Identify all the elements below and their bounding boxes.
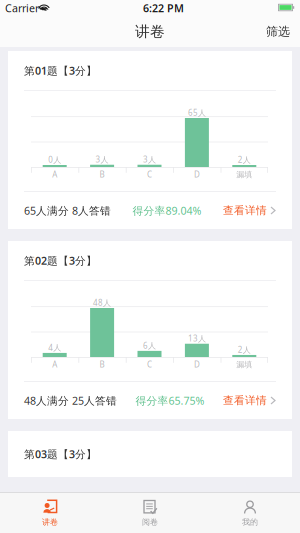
- staticText: 0人: [48, 154, 61, 165]
- staticText: B: [100, 359, 105, 370]
- staticText: 48人: [93, 297, 111, 308]
- staticText: A: [52, 169, 57, 180]
- button[interactable]: 查看详情: [223, 388, 276, 413]
- staticText: 3人: [96, 154, 109, 165]
- button[interactable]: 我的: [200, 493, 300, 533]
- staticText: 2人: [238, 344, 251, 355]
- button[interactable]: 查看详情: [223, 198, 276, 223]
- staticText: 65人满分 8人答错: [24, 203, 111, 218]
- staticText: C: [147, 359, 152, 370]
- button[interactable]: 阅卷: [100, 493, 200, 533]
- staticText: 阅卷: [142, 517, 158, 527]
- staticText: 第01题【3分】: [24, 63, 97, 78]
- staticText: 得分率89.04%: [132, 203, 201, 218]
- staticText: 我的: [242, 517, 258, 527]
- staticText: 2人: [238, 154, 251, 165]
- staticText: 48人满分 25人答错: [24, 393, 117, 408]
- staticText: B: [100, 169, 105, 180]
- staticText: 查看详情: [223, 204, 267, 217]
- button[interactable]: 讲卷: [0, 493, 100, 533]
- staticText: A: [52, 359, 57, 370]
- staticText: Carrier: [5, 1, 39, 15]
- staticText: 得分率65.75%: [135, 393, 204, 408]
- staticText: 讲卷: [42, 517, 58, 527]
- staticText: 6人: [143, 340, 156, 351]
- button[interactable]: 筛选: [256, 16, 300, 47]
- staticText: 讲卷: [135, 22, 165, 40]
- staticText: D: [194, 169, 200, 180]
- staticText: 3人: [143, 154, 156, 165]
- staticText: 第02题【3分】: [24, 253, 97, 268]
- staticText: 筛选: [266, 24, 290, 39]
- staticText: 第03题【3分】: [24, 447, 97, 461]
- staticText: 13人: [188, 333, 206, 344]
- staticText: 漏填: [236, 360, 252, 369]
- staticText: 4人: [48, 342, 61, 353]
- staticText: 查看详情: [223, 394, 267, 407]
- staticText: 6:22 PM: [143, 1, 184, 15]
- staticText: D: [194, 359, 200, 370]
- staticText: 漏填: [236, 170, 252, 179]
- staticText: C: [147, 169, 152, 180]
- staticText: 65人: [188, 107, 206, 118]
